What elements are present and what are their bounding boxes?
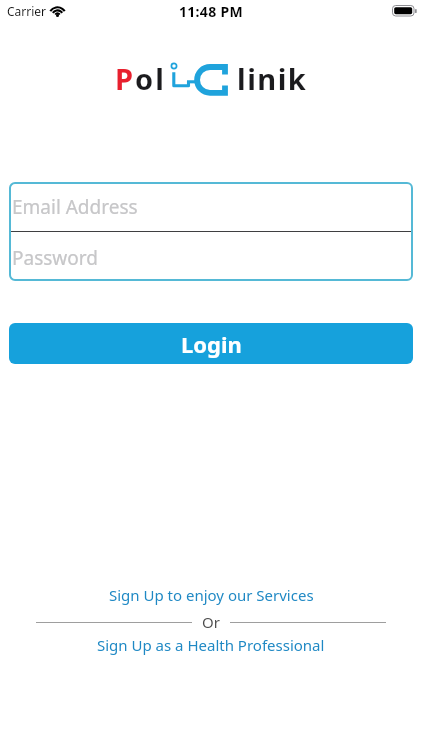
staticText: 11:48 PM [179, 2, 243, 21]
staticText: Password [12, 245, 98, 271]
staticText: Login [181, 329, 242, 359]
button[interactable]: Password [9, 232, 413, 281]
staticText: Or [202, 612, 220, 632]
button[interactable]: Sign Up as a Health Professional [97, 635, 325, 655]
staticText: Sign Up to enjoy our Services [109, 585, 314, 605]
button[interactable]: Sign Up to enjoy our Services [109, 585, 314, 605]
staticText: Carrier [7, 3, 47, 19]
button[interactable]: Login [9, 323, 413, 364]
staticText: Sign Up as a Health Professional [97, 635, 325, 655]
button[interactable]: Email Address [9, 182, 413, 231]
staticText: linik [237, 59, 308, 98]
staticText: Email Address [12, 194, 138, 220]
staticText: Pol [115, 59, 166, 98]
